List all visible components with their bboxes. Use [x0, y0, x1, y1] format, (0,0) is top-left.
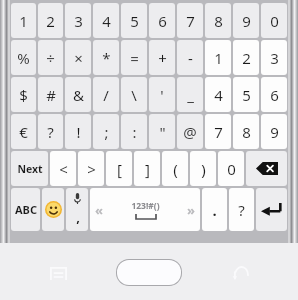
button[interactable]: [: [106, 151, 132, 186]
staticText: \: [131, 85, 137, 105]
button[interactable]: ]: [134, 151, 160, 186]
button[interactable]: ABC: [11, 188, 40, 231]
button[interactable]: 6: [149, 3, 175, 38]
button[interactable]: %: [11, 40, 36, 75]
staticText: 3: [74, 11, 83, 31]
button[interactable]: *: [93, 40, 119, 75]
button[interactable]: 7: [205, 114, 231, 149]
staticText: >: [87, 159, 96, 179]
button[interactable]: (: [162, 151, 188, 186]
staticText: .: [212, 200, 217, 220]
button[interactable]: .: [202, 188, 227, 231]
staticText: 0: [227, 159, 236, 179]
button[interactable]: Menu: [45, 260, 71, 286]
button[interactable]: 4: [205, 77, 231, 112]
button[interactable]: Backspace: [246, 151, 287, 186]
staticText: :: [132, 122, 137, 142]
staticText: 4: [102, 11, 111, 31]
staticText: _: [187, 85, 194, 105]
button[interactable]: €: [11, 114, 36, 149]
staticText: Next: [17, 162, 43, 176]
button[interactable]: &: [65, 77, 91, 112]
button[interactable]: ': [149, 77, 175, 112]
button[interactable]: 3: [261, 40, 287, 75]
staticText: 5: [242, 85, 251, 105]
button[interactable]: 1: [205, 40, 231, 75]
staticText: <: [59, 159, 68, 179]
button[interactable]: Emoji: [42, 188, 64, 231]
staticText: 1: [214, 48, 223, 68]
button[interactable]: 2: [38, 3, 63, 38]
staticText: «: [95, 201, 103, 219]
button[interactable]: 5: [233, 77, 259, 112]
button[interactable]: ×: [65, 40, 91, 75]
staticText: 6: [158, 11, 167, 31]
staticText: »: [187, 201, 195, 219]
button[interactable]: #: [38, 77, 63, 112]
button[interactable]: 0: [261, 3, 287, 38]
button[interactable]: 3: [65, 3, 91, 38]
button[interactable]: +: [149, 40, 175, 75]
button[interactable]: ": [149, 114, 175, 149]
staticText: !: [76, 122, 81, 142]
button[interactable]: \: [121, 77, 147, 112]
staticText: 6: [270, 85, 279, 105]
button[interactable]: >: [78, 151, 104, 186]
staticText: *: [102, 48, 111, 68]
button[interactable]: 7: [177, 3, 203, 38]
staticText: 3: [270, 48, 279, 68]
staticText: 7: [214, 122, 223, 142]
button[interactable]: /: [93, 77, 119, 112]
staticText: 7: [186, 11, 195, 31]
button[interactable]: 8: [233, 114, 259, 149]
staticText: ,: [76, 208, 80, 226]
button[interactable]: :: [121, 114, 147, 149]
staticText: 2: [46, 11, 55, 31]
staticText: #: [46, 85, 56, 105]
button[interactable]: _: [177, 77, 203, 112]
staticText: €: [19, 122, 28, 142]
staticText: &: [73, 85, 84, 105]
staticText: %: [17, 48, 30, 68]
staticText: -: [188, 48, 193, 68]
button[interactable]: !: [65, 114, 91, 149]
staticText: 8: [214, 11, 223, 31]
staticText: ]: [145, 159, 150, 179]
staticText: 123!#(): [131, 200, 160, 212]
button[interactable]: -: [177, 40, 203, 75]
button[interactable]: ): [190, 151, 216, 186]
button[interactable]: Home: [117, 260, 181, 285]
button[interactable]: 6: [261, 77, 287, 112]
button[interactable]: Next: [11, 151, 48, 186]
button[interactable]: 1: [11, 3, 36, 38]
staticText: ?: [238, 200, 245, 220]
button[interactable]: 8: [205, 3, 231, 38]
staticText: ?: [47, 122, 54, 142]
button[interactable]: 5: [121, 3, 147, 38]
button[interactable]: 0: [218, 151, 244, 186]
button[interactable]: ;: [93, 114, 119, 149]
staticText: 2: [242, 48, 251, 68]
staticText: (: [173, 159, 178, 179]
button[interactable]: ?: [229, 188, 254, 231]
staticText: 1: [19, 11, 28, 31]
button[interactable]: <: [50, 151, 76, 186]
button[interactable]: Enter: [256, 188, 287, 231]
button[interactable]: 2: [233, 40, 259, 75]
staticText: 5: [130, 11, 139, 31]
button[interactable]: 9: [261, 114, 287, 149]
button[interactable]: 4: [93, 3, 119, 38]
staticText: 8: [242, 122, 251, 142]
button[interactable]: =: [121, 40, 147, 75]
staticText: [: [117, 159, 122, 179]
button[interactable]: Voice input and comma: [66, 188, 88, 231]
button[interactable]: ÷: [38, 40, 63, 75]
button[interactable]: 9: [233, 3, 259, 38]
staticText: =: [130, 48, 139, 68]
staticText: ): [201, 159, 206, 179]
button[interactable]: $: [11, 77, 36, 112]
button[interactable]: Space: [90, 188, 200, 231]
button[interactable]: ?: [38, 114, 63, 149]
button[interactable]: @: [177, 114, 203, 149]
